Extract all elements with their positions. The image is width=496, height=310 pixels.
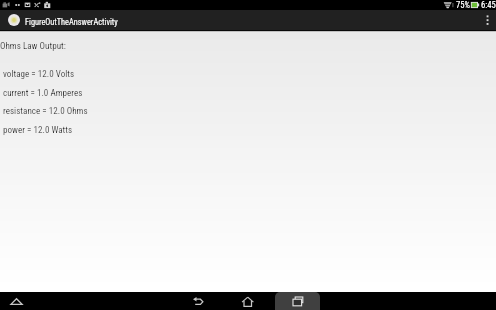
staticText: current = 1.0 Amperes xyxy=(3,88,83,99)
staticText: 75% xyxy=(456,0,470,10)
staticText: Ohms Law Output: xyxy=(0,41,66,52)
staticText: voltage = 12.0 Volts xyxy=(3,69,75,80)
button[interactable]: More options xyxy=(478,10,496,31)
staticText: power = 12.0 Watts xyxy=(3,125,73,136)
staticText: 6:45 xyxy=(481,0,496,10)
staticText: resistance = 12.0 Ohms xyxy=(3,106,88,117)
button[interactable]: Home xyxy=(228,292,268,310)
button[interactable]: Back xyxy=(179,292,219,310)
button[interactable]: Recent apps xyxy=(275,292,320,310)
staticText: FigureOutTheAnswerActivity xyxy=(25,17,118,27)
button[interactable]: Hide keyboard xyxy=(7,292,25,310)
